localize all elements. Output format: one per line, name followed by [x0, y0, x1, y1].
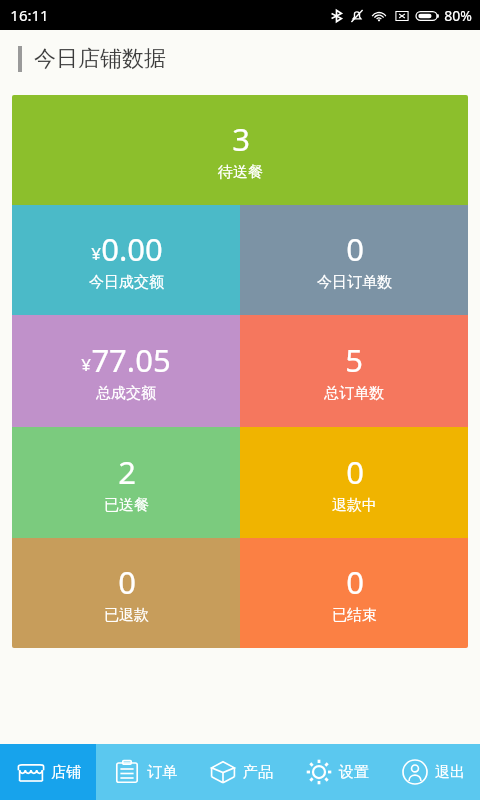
staticText: 订单	[147, 763, 177, 782]
button[interactable]: 5	[240, 315, 468, 427]
staticText: ¥	[81, 353, 91, 376]
staticText: 0	[346, 451, 364, 493]
staticText: 3	[232, 118, 250, 160]
staticText: 已结束	[332, 606, 377, 625]
staticText: 0	[346, 228, 364, 270]
staticText: 退出	[435, 763, 465, 782]
button[interactable]: 店铺	[0, 744, 96, 800]
staticText: 80%	[444, 6, 472, 25]
button[interactable]: 退出	[384, 744, 480, 800]
button[interactable]: 0	[12, 538, 240, 648]
staticText: 总成交额	[96, 384, 156, 403]
staticText: ¥	[91, 242, 101, 265]
button[interactable]: 2	[12, 427, 240, 538]
button[interactable]: ¥	[12, 315, 240, 427]
staticText: 今日成交额	[89, 273, 164, 292]
button[interactable]: 0	[240, 205, 468, 315]
staticText: 今日店铺数据	[34, 45, 166, 73]
staticText: 已送餐	[104, 496, 149, 515]
staticText: 0	[346, 561, 364, 603]
staticText: 5	[345, 339, 363, 381]
staticText: 待送餐	[218, 163, 263, 182]
staticText: 0.00	[101, 228, 163, 270]
button[interactable]: 3	[12, 95, 468, 205]
staticText: 设置	[339, 763, 369, 782]
staticText: 已退款	[104, 606, 149, 625]
staticText: 0	[118, 561, 136, 603]
button[interactable]: 订单	[96, 744, 192, 800]
button[interactable]: 设置	[288, 744, 384, 800]
staticText: 77.05	[91, 339, 171, 381]
button[interactable]: 产品	[192, 744, 288, 800]
staticText: 今日订单数	[317, 273, 392, 292]
staticText: 16:11	[10, 5, 49, 25]
staticText: 总订单数	[324, 384, 384, 403]
button[interactable]: 0	[240, 538, 468, 648]
staticText: 店铺	[51, 763, 81, 782]
staticText: 退款中	[332, 496, 377, 515]
button[interactable]: 0	[240, 427, 468, 538]
staticText: 产品	[243, 763, 273, 782]
staticText: 2	[118, 451, 136, 493]
button[interactable]: ¥	[12, 205, 240, 315]
